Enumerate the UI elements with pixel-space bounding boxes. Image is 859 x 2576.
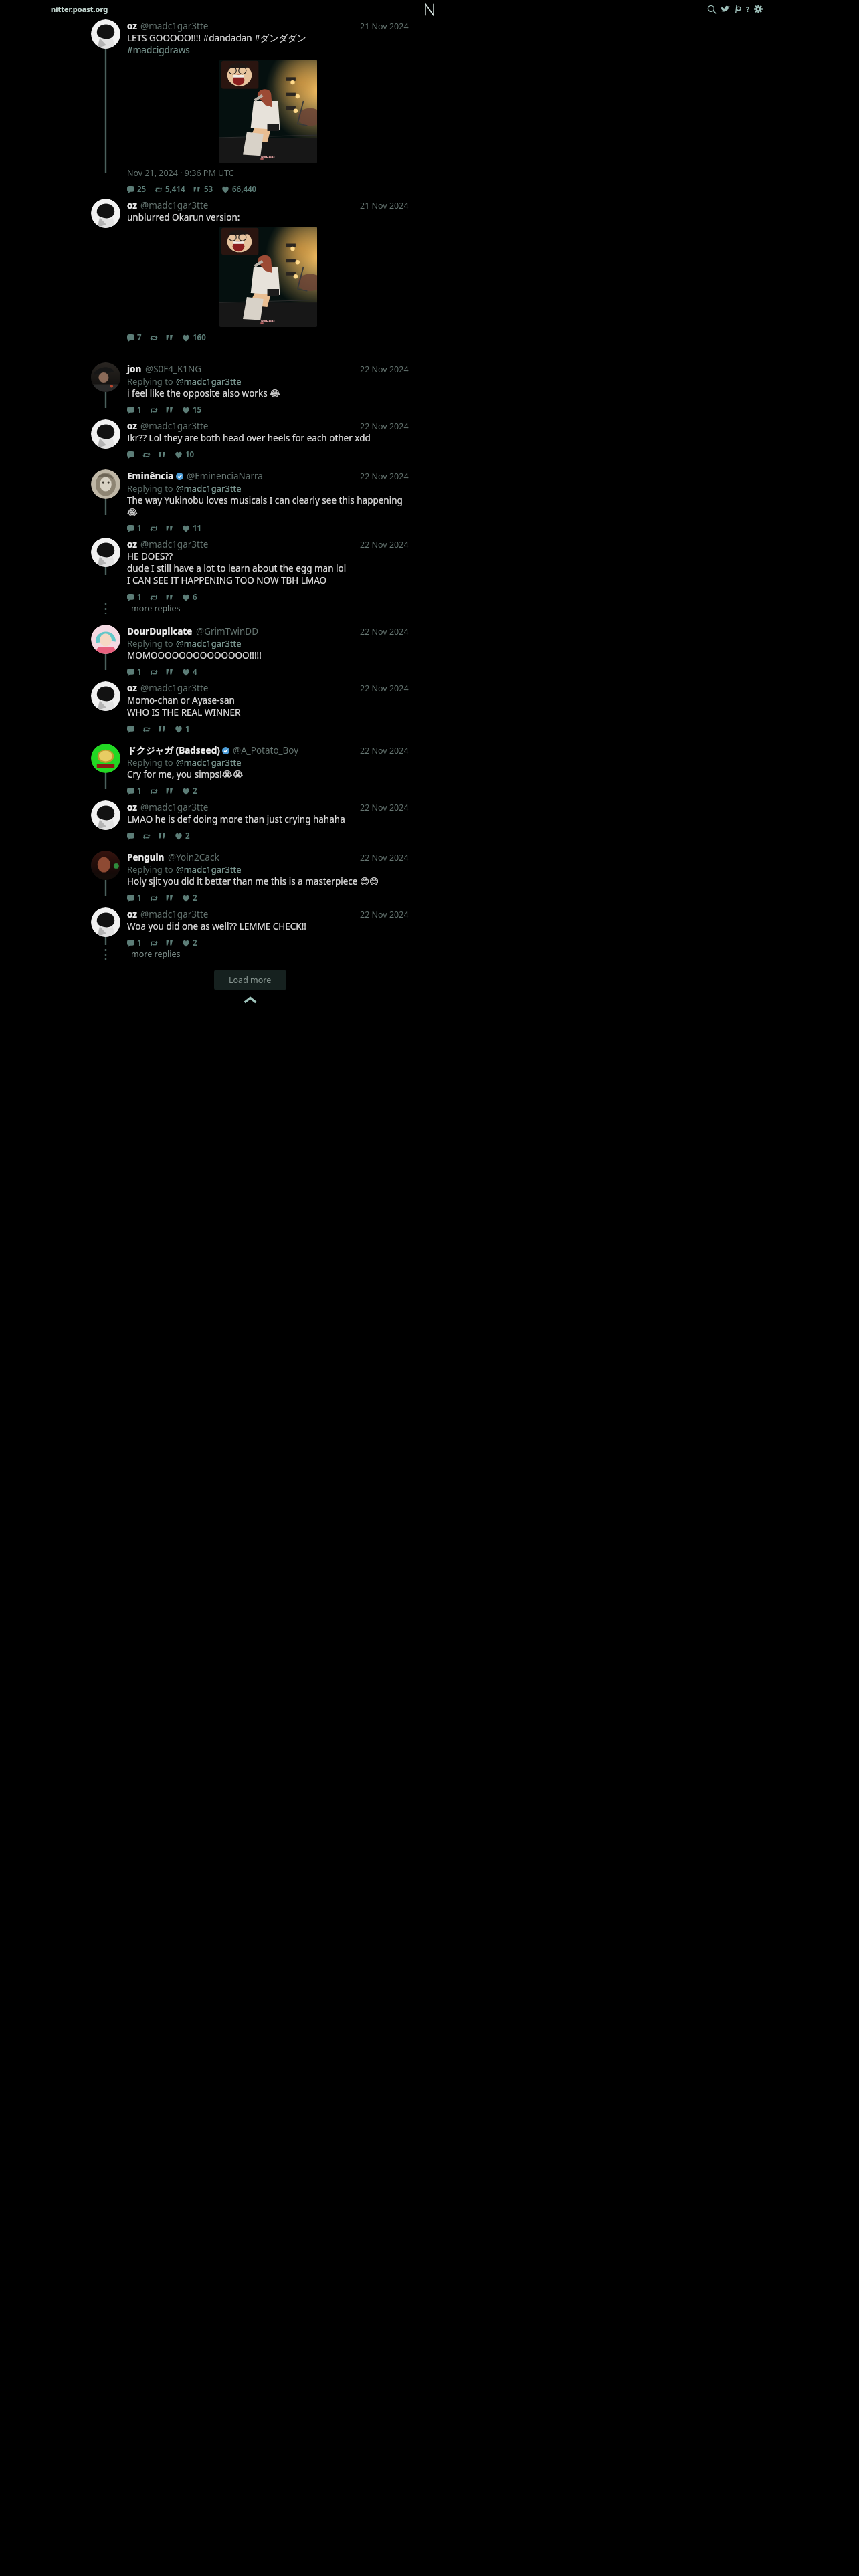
- button[interactable]: 1: [127, 405, 409, 415]
- staticText: 2: [185, 831, 190, 841]
- button[interactable]: jon: [91, 362, 409, 415]
- staticText: 22 Nov 2024: [360, 745, 409, 756]
- staticText: @madc1gar3tte: [140, 908, 209, 920]
- staticText: Replying to: [127, 863, 176, 875]
- staticText: @madc1gar3tte: [140, 682, 209, 694]
- button[interactable]: BeReal.: [219, 227, 317, 327]
- button[interactable]: Eminência: [91, 469, 409, 534]
- staticText: @madc1gar3tte: [140, 538, 209, 550]
- staticText: Holy sjit you did it better than me this…: [127, 875, 379, 887]
- button[interactable]: 2: [127, 831, 409, 841]
- button[interactable]: Donate: [734, 5, 742, 13]
- staticText: more replies: [131, 948, 181, 960]
- staticText: @madc1gar3tte: [176, 482, 242, 494]
- staticText: 11: [193, 523, 202, 534]
- button[interactable]: ドクジャガ (Badseed): [91, 744, 409, 796]
- button[interactable]: Scroll to top: [244, 996, 257, 1004]
- button[interactable]: Search: [707, 5, 717, 14]
- button[interactable]: oz: [91, 681, 409, 734]
- staticText: oz: [127, 420, 137, 432]
- staticText: jon: [127, 363, 142, 375]
- button[interactable]: 1: [127, 938, 409, 948]
- button[interactable]: more replies: [91, 603, 409, 614]
- staticText: 1: [137, 405, 142, 415]
- staticText: Replying to: [127, 482, 176, 494]
- staticText: 21 Nov 2024: [360, 200, 409, 211]
- staticText: Ikr?? Lol they are both head over heels …: [127, 432, 371, 444]
- staticText: 53: [204, 184, 213, 195]
- button[interactable]: 25: [127, 184, 409, 195]
- button[interactable]: ?: [746, 4, 750, 14]
- button[interactable]: Twitter: [721, 5, 730, 14]
- staticText: 66,440: [232, 184, 257, 195]
- staticText: BeReal.: [261, 318, 276, 324]
- button[interactable]: 7: [127, 332, 409, 343]
- staticText: @madc1gar3tte: [140, 420, 209, 432]
- staticText: 1: [137, 592, 142, 603]
- button[interactable]: Load more: [214, 970, 286, 990]
- staticText: LETS GOOOOO!!!! #dandadan #ダンダダン: [127, 32, 306, 44]
- staticText: @EminenciaNarra: [187, 470, 263, 482]
- staticText: 22 Nov 2024: [360, 683, 409, 694]
- button[interactable]: BeReal.: [219, 60, 317, 163]
- staticText: 22 Nov 2024: [360, 626, 409, 637]
- staticText: 1: [137, 893, 142, 903]
- button[interactable]: 1: [127, 724, 409, 734]
- button[interactable]: Settings: [754, 5, 763, 13]
- button[interactable]: 1: [127, 667, 409, 677]
- button[interactable]: Nitter home: [423, 2, 436, 17]
- staticText: 22 Nov 2024: [360, 852, 409, 863]
- button[interactable]: 1: [127, 893, 409, 903]
- button[interactable]: 1: [127, 786, 409, 796]
- button[interactable]: 1: [127, 523, 409, 534]
- staticText: @madc1gar3tte: [140, 20, 209, 32]
- staticText: Replying to: [127, 756, 176, 768]
- button[interactable]: oz: [91, 419, 409, 460]
- staticText: oz: [127, 20, 137, 32]
- staticText: @madc1gar3tte: [176, 863, 242, 875]
- staticText: 22 Nov 2024: [360, 364, 409, 375]
- staticText: oz: [127, 682, 137, 694]
- button[interactable]: oz: [91, 19, 409, 195]
- staticText: @GrimTwinDD: [196, 625, 259, 637]
- staticText: @madc1gar3tte: [176, 375, 242, 387]
- staticText: @madc1gar3tte: [176, 756, 242, 768]
- button[interactable]: nitter.poast.org: [51, 4, 108, 14]
- staticText: 2: [193, 786, 197, 796]
- button[interactable]: DourDuplicate: [91, 625, 409, 677]
- staticText: @madc1gar3tte: [140, 801, 209, 813]
- button[interactable]: oz: [91, 800, 409, 841]
- staticText: 2: [193, 893, 197, 903]
- staticText: BeReal.: [261, 154, 276, 160]
- staticText: Replying to: [127, 375, 176, 387]
- staticText: ドクジャガ (Badseed): [127, 744, 220, 756]
- button[interactable]: oz: [91, 538, 409, 603]
- staticText: Eminência: [127, 470, 174, 482]
- staticText: 25: [137, 184, 147, 195]
- staticText: Penguin: [127, 851, 165, 863]
- staticText: @madc1gar3tte: [140, 199, 209, 211]
- staticText: 22 Nov 2024: [360, 539, 409, 550]
- staticText: Cry for me, you simps!😭😭: [127, 768, 244, 780]
- button[interactable]: more replies: [91, 948, 409, 960]
- staticText: 22 Nov 2024: [360, 802, 409, 813]
- staticText: more replies: [131, 603, 181, 614]
- button[interactable]: Penguin: [91, 851, 409, 903]
- staticText: @Yoin2Cack: [168, 851, 219, 863]
- staticText: 22 Nov 2024: [360, 471, 409, 482]
- staticText: 10: [185, 449, 195, 460]
- staticText: 6: [193, 592, 197, 603]
- button[interactable]: 10: [127, 449, 409, 460]
- staticText: 22 Nov 2024: [360, 421, 409, 432]
- button[interactable]: oz: [91, 907, 409, 948]
- staticText: 4: [193, 667, 197, 677]
- button[interactable]: oz: [91, 199, 409, 343]
- staticText: oz: [127, 199, 137, 211]
- staticText: i feel like the opposite also works 😂: [127, 387, 280, 399]
- staticText: Momo-chan or Ayase-san: [127, 694, 235, 706]
- button[interactable]: 1: [127, 592, 409, 603]
- staticText: MOMOOOOOOOOOOOOOO!!!!!: [127, 649, 262, 661]
- staticText: 22 Nov 2024: [360, 909, 409, 920]
- staticText: Load more: [229, 974, 272, 986]
- staticText: I CAN SEE IT HAPPENING TOO NOW TBH LMAO: [127, 574, 327, 586]
